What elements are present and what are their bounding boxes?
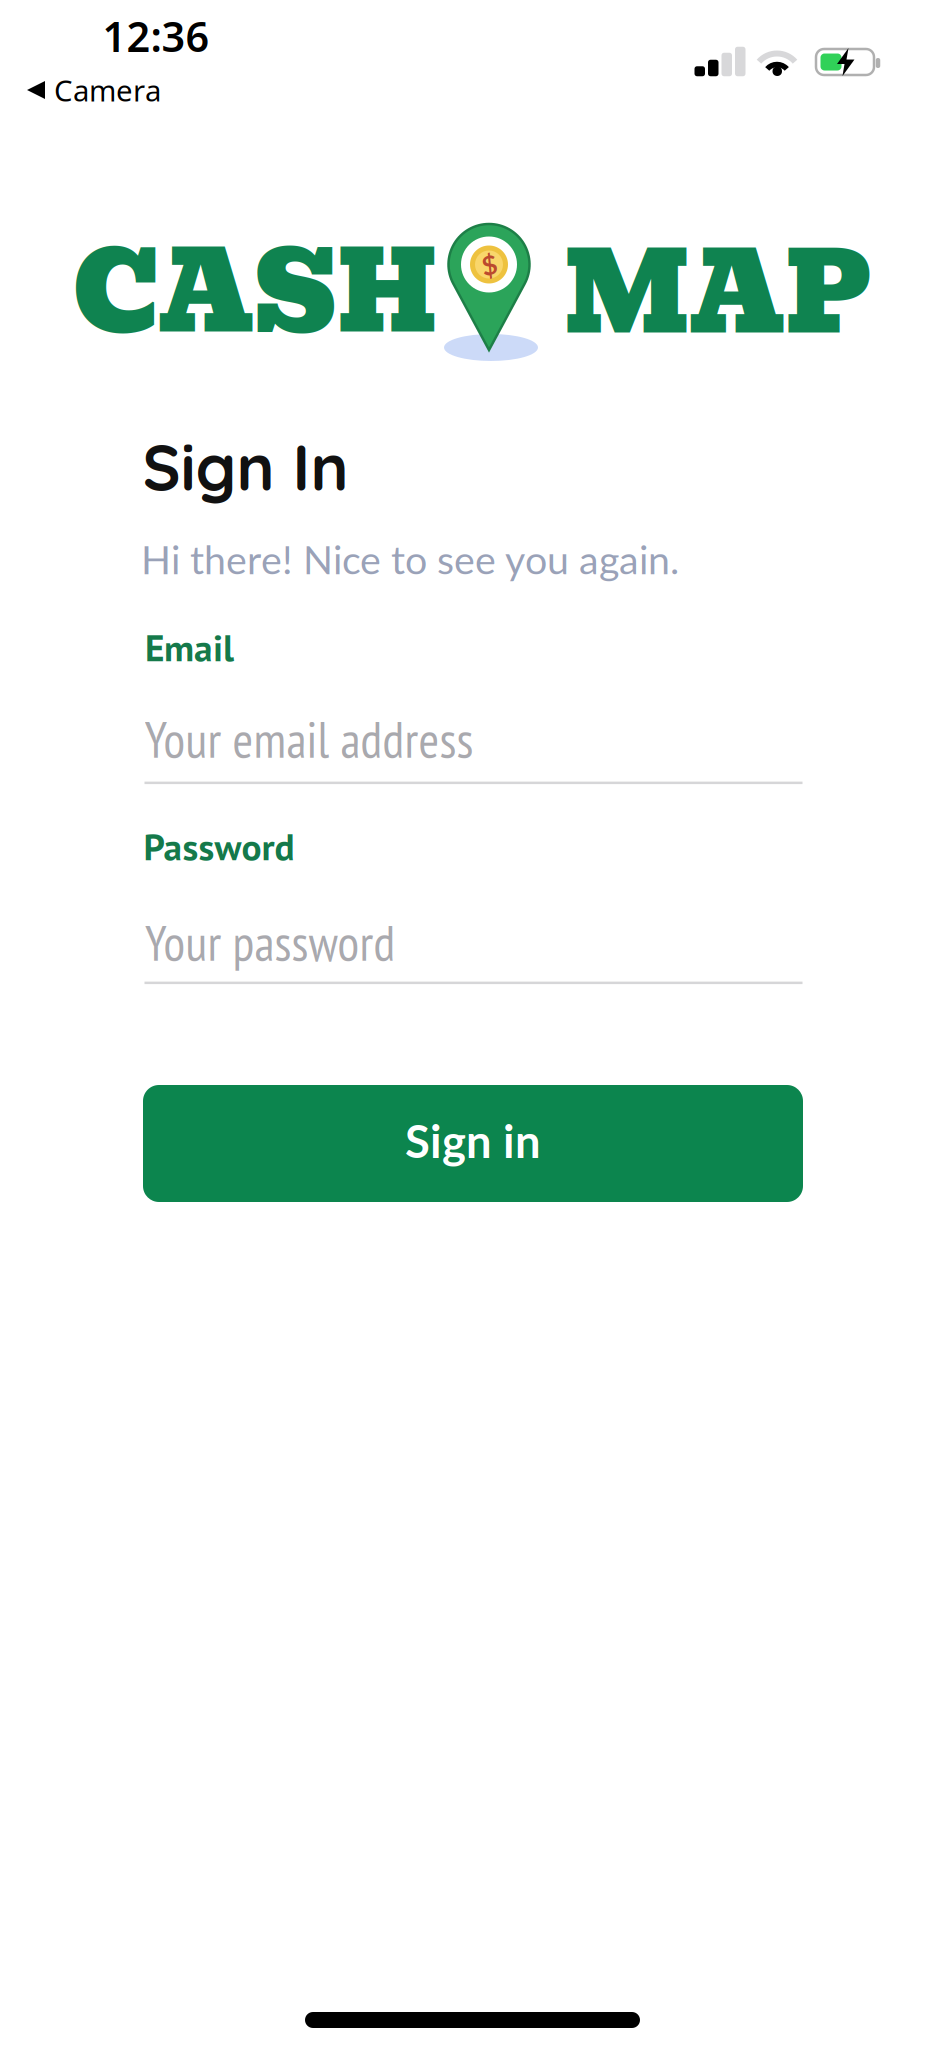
staticText: Password [143,822,294,871]
staticText: 12:36 [102,9,209,63]
staticText: $ [481,248,496,280]
staticText: Your password [144,910,395,975]
staticText: Your email address [144,707,473,772]
button[interactable]: Back to Camera [27,70,161,109]
staticText: MAP [564,206,872,382]
staticText: Sign in [405,1113,541,1168]
button[interactable]: Sign in [143,1085,803,1202]
button[interactable]: Password, secure text field [144,907,802,984]
staticText: CASH [72,205,438,381]
staticText: Sign In [142,426,348,506]
staticText: Camera [54,70,161,109]
button[interactable]: Email, text field [144,707,802,784]
staticText: Email [145,623,234,672]
staticText: Hi there! Nice to see you again. [141,535,679,583]
